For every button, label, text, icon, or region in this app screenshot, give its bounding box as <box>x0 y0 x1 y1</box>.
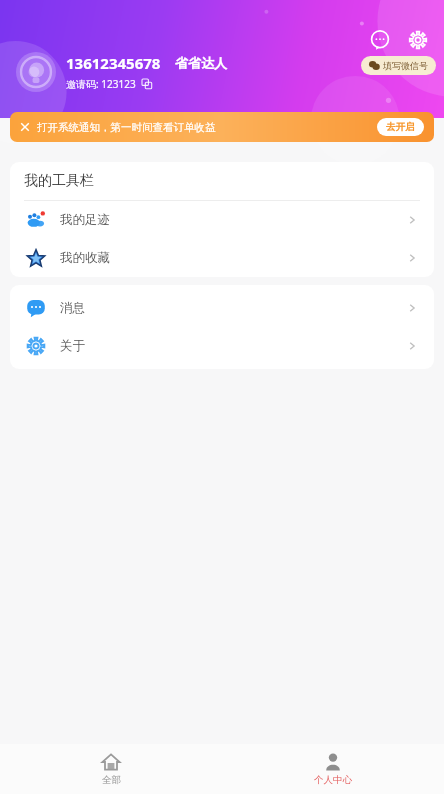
button[interactable]: 我的收藏 <box>10 239 434 277</box>
staticText: 13612345678 <box>66 53 161 73</box>
button[interactable]: 消息 <box>10 289 434 327</box>
button[interactable]: Messages <box>366 26 394 54</box>
button[interactable]: 邀请码: 123123 <box>66 77 152 91</box>
staticText: 填写微信号 <box>383 60 428 71</box>
button[interactable]: Settings <box>404 26 432 54</box>
staticText: 去开启 <box>386 121 415 133</box>
staticText: 邀请码: 123123 <box>66 77 136 91</box>
staticText: 全部 <box>102 774 121 786</box>
staticText: 我的收藏 <box>60 250 110 266</box>
staticText: 打开系统通知，第一时间查看订单收益 <box>37 121 216 134</box>
button[interactable]: Avatar <box>16 52 56 92</box>
other: Copy invite code <box>142 79 152 89</box>
staticText: 我的足迹 <box>60 212 110 228</box>
staticText: 我的工具栏 <box>24 172 94 190</box>
button[interactable]: 个人中心 <box>295 748 371 790</box>
button[interactable]: 关于 <box>10 327 434 365</box>
staticText: 个人中心 <box>314 774 352 786</box>
button[interactable]: Close <box>10 112 434 142</box>
button[interactable]: 去开启 <box>377 118 424 136</box>
button[interactable]: 填写微信号 <box>361 56 436 75</box>
staticText: 省省达人 <box>175 55 227 71</box>
staticText: 关于 <box>60 338 85 354</box>
other: Close <box>20 122 30 132</box>
button[interactable]: 我的足迹 <box>10 201 434 239</box>
button[interactable]: 全部 <box>73 748 149 790</box>
staticText: 消息 <box>60 300 85 316</box>
